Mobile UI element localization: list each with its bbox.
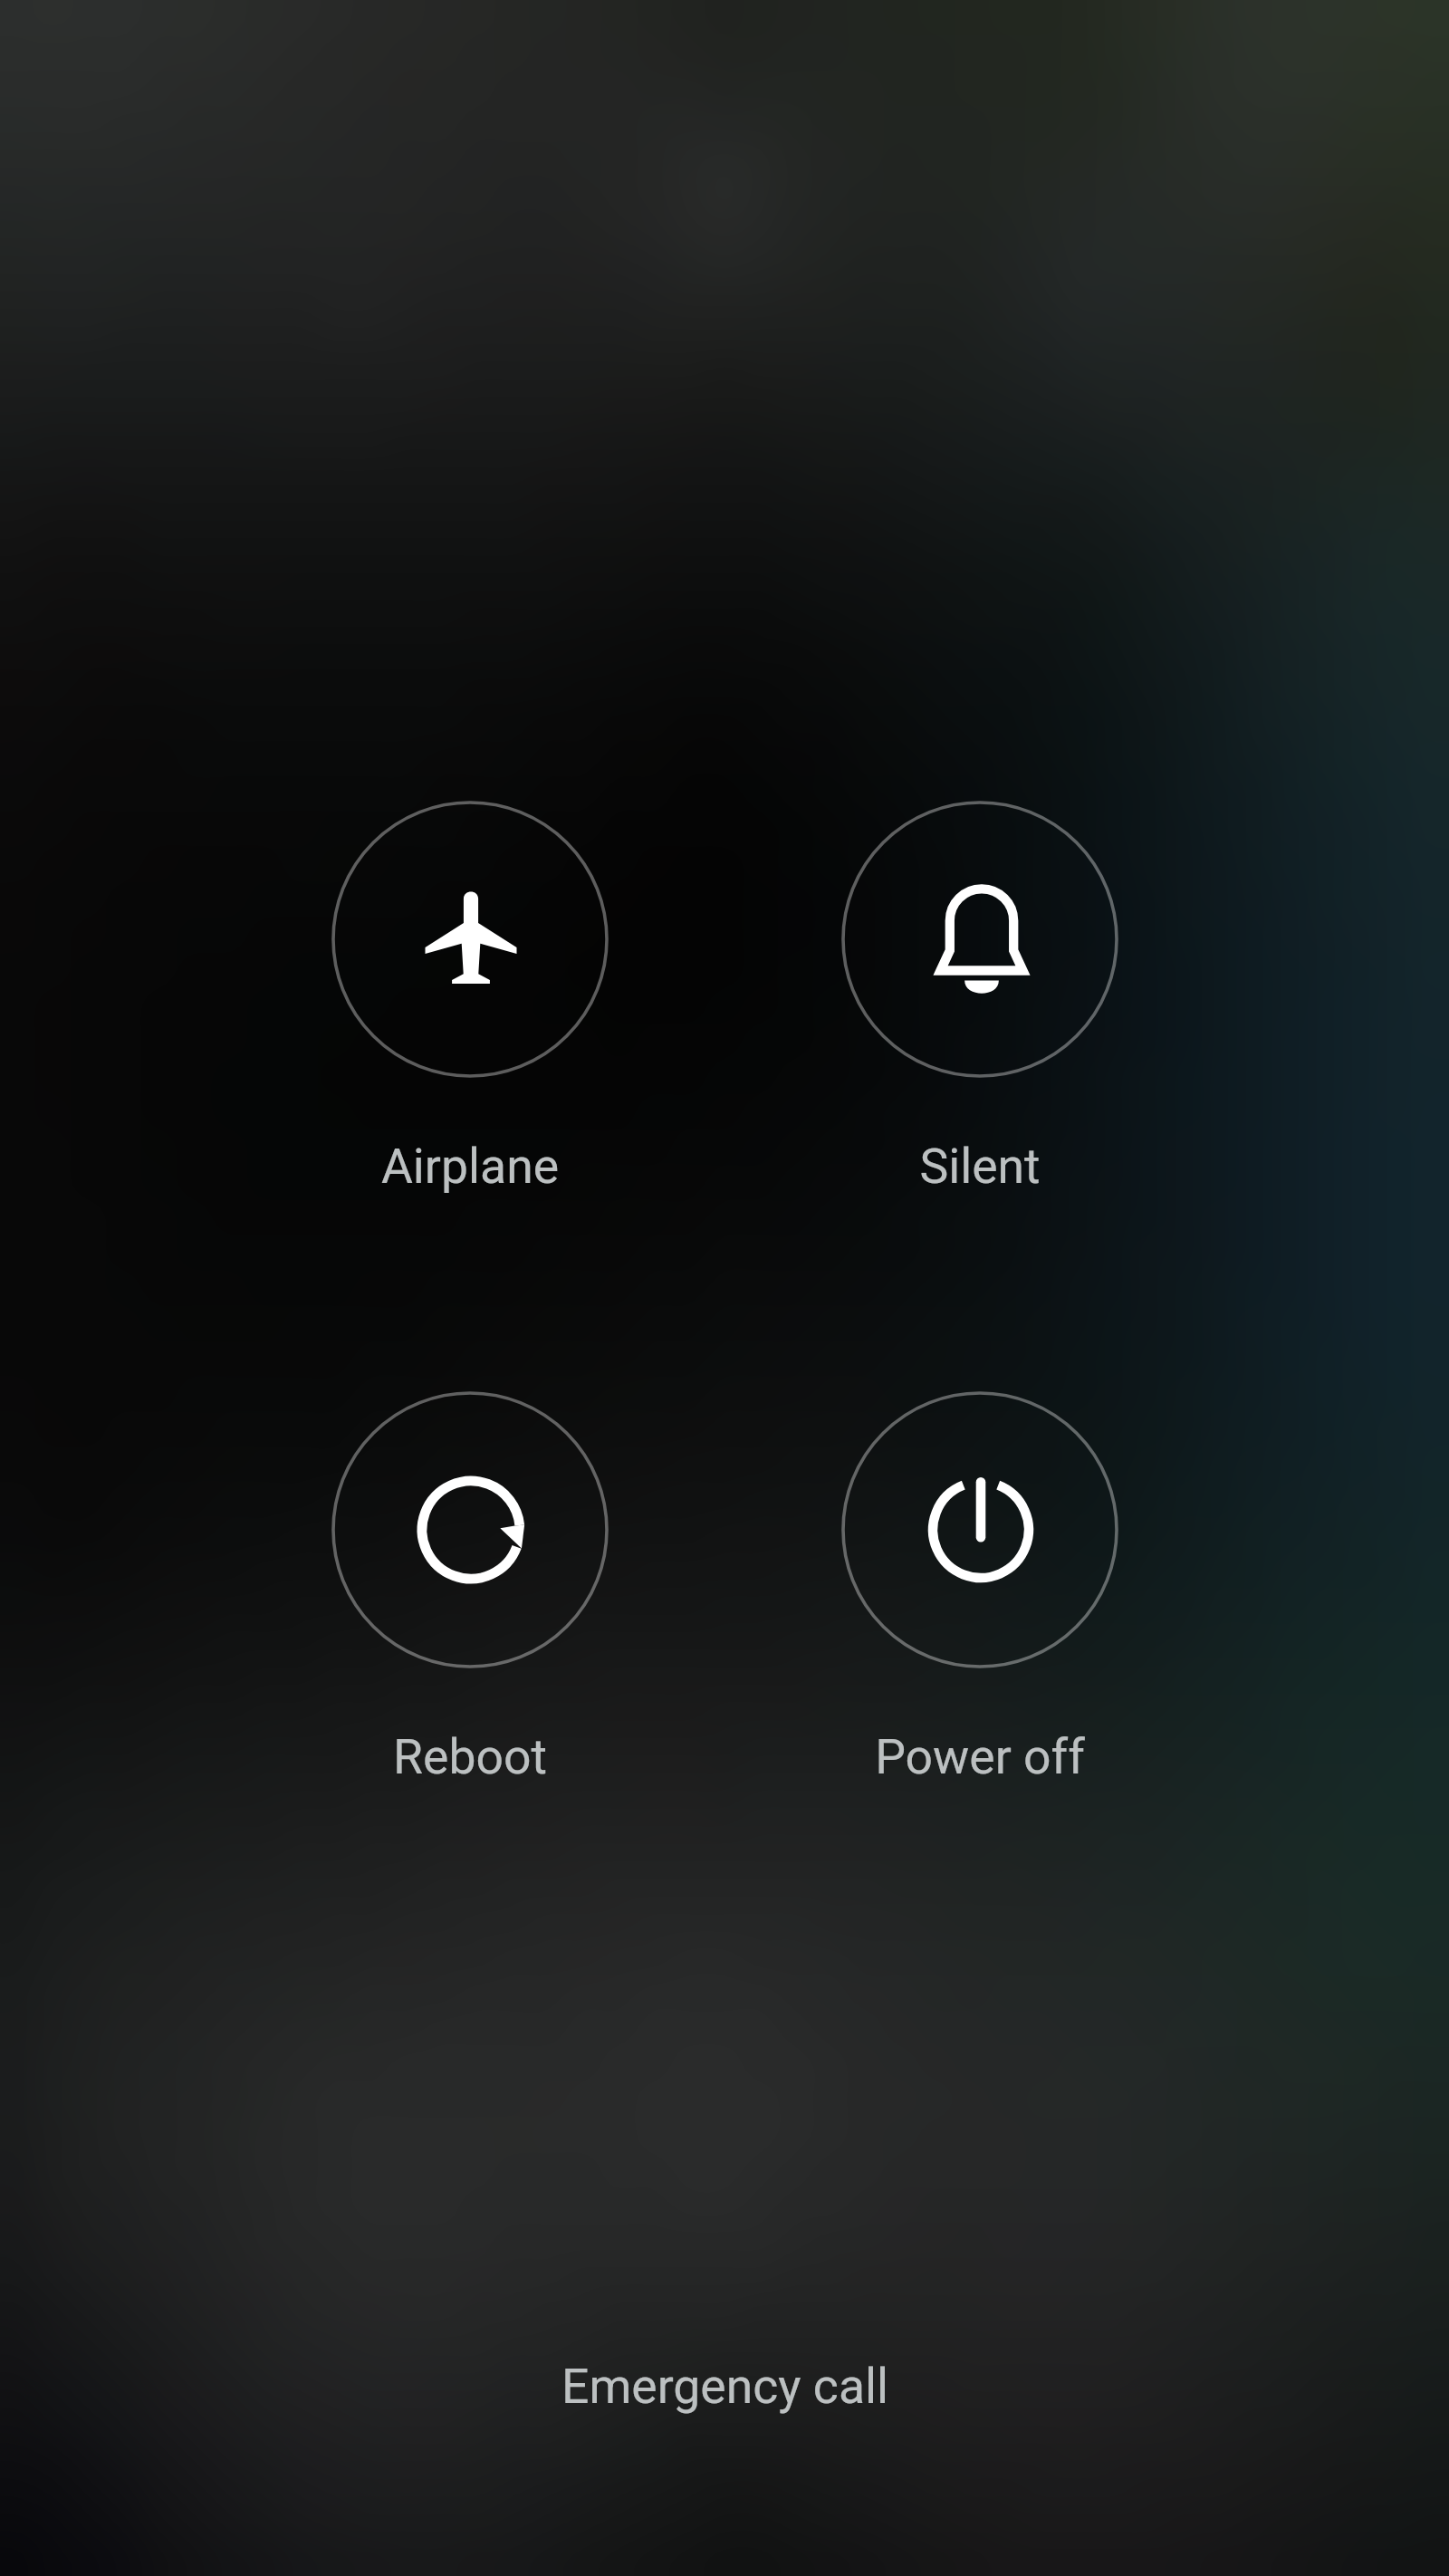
button[interactable]: Airplane bbox=[280, 783, 660, 1210]
staticText: Emergency call bbox=[561, 2358, 888, 2415]
button[interactable]: Power off bbox=[790, 1373, 1170, 1801]
staticText: Silent bbox=[790, 1138, 1170, 1195]
staticText: Power off bbox=[790, 1728, 1170, 1785]
button[interactable]: Reboot bbox=[280, 1373, 660, 1801]
staticText: Airplane bbox=[280, 1138, 660, 1195]
staticText: Reboot bbox=[280, 1728, 660, 1785]
button[interactable]: Silent bbox=[790, 783, 1170, 1210]
button[interactable]: Emergency call bbox=[453, 2322, 996, 2449]
